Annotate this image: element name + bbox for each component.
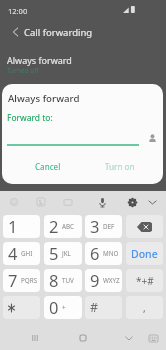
- button[interactable]: Change keyboard: [142, 327, 164, 349]
- button[interactable]: 2: [44, 215, 82, 238]
- button[interactable]: Backspace: [126, 215, 163, 238]
- staticText: 12:00: [8, 6, 28, 16]
- staticText: 0: [49, 296, 59, 318]
- button[interactable]: Emoji: [5, 193, 23, 211]
- staticText: TUV: [62, 276, 74, 285]
- staticText: 9: [90, 269, 100, 291]
- staticText: 6: [90, 242, 100, 264]
- staticText: 8: [49, 269, 59, 291]
- button[interactable]: Recent apps: [24, 327, 46, 349]
- staticText: Call forwarding: [24, 26, 93, 39]
- staticText: Turn on: [105, 161, 135, 172]
- staticText: Turned off: [7, 66, 39, 75]
- staticText: Cancel: [35, 161, 61, 172]
- button[interactable]: Turn on: [100, 159, 140, 174]
- staticText: Done: [131, 247, 158, 261]
- staticText: ,: [143, 301, 146, 315]
- staticText: DEF: [103, 222, 115, 231]
- button[interactable]: Stickers: [32, 193, 50, 211]
- staticText: PQRS: [21, 276, 38, 285]
- staticText: *+#: [136, 274, 154, 288]
- button[interactable]: Pick contact: [144, 130, 160, 146]
- staticText: Always forward: [7, 54, 72, 66]
- staticText: Forward to:: [7, 112, 53, 124]
- staticText: MNO: [103, 249, 119, 258]
- button[interactable]: Pound: [85, 296, 122, 319]
- button[interactable]: Home: [72, 327, 94, 349]
- button[interactable]: 4: [3, 242, 40, 265]
- button[interactable]: Voice input: [93, 193, 111, 211]
- staticText: GHI: [21, 249, 33, 258]
- button[interactable]: 0: [44, 296, 82, 319]
- button[interactable]: Symbols: [126, 269, 163, 292]
- button[interactable]: 1: [3, 215, 40, 238]
- staticText: 7: [8, 269, 18, 291]
- button[interactable]: Hide keyboard: [118, 327, 140, 349]
- button[interactable]: Done: [126, 242, 163, 265]
- staticText: 2: [49, 215, 59, 237]
- button[interactable]: 6: [85, 242, 122, 265]
- button[interactable]: Comma: [126, 296, 163, 319]
- button[interactable]: Keyboard settings: [123, 193, 141, 211]
- button[interactable]: Always forward: [0, 50, 166, 80]
- staticText: +: [62, 303, 66, 312]
- staticText: JKL: [62, 249, 71, 258]
- button[interactable]: 8: [44, 269, 82, 292]
- staticText: 5: [49, 242, 59, 264]
- button[interactable]: 9: [85, 269, 122, 292]
- staticText: WXYZ: [103, 276, 120, 285]
- staticText: 3: [90, 215, 100, 237]
- button[interactable]: 7: [3, 269, 40, 292]
- staticText: 1: [8, 215, 18, 237]
- staticText: #: [90, 299, 99, 316]
- staticText: ABC: [62, 222, 75, 231]
- button[interactable]: Clipboard: [59, 193, 77, 211]
- staticText: 4: [8, 242, 18, 264]
- button[interactable]: 3: [85, 215, 122, 238]
- button[interactable]: Star: [3, 296, 40, 319]
- button[interactable]: Cancel: [30, 159, 66, 174]
- button[interactable]: More options: [143, 193, 161, 211]
- button[interactable]: 5: [44, 242, 82, 265]
- staticText: Always forward: [8, 92, 80, 105]
- button[interactable]: Navigate up: [5, 20, 25, 44]
